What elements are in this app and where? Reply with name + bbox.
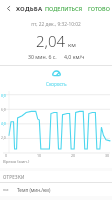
staticText: 8,0 [1, 93, 6, 98]
staticText: ГОТОВО [88, 5, 110, 12]
other: Скорость [52, 70, 61, 79]
staticText: 2,0 [1, 135, 6, 140]
staticText: 20 [71, 153, 76, 158]
staticText: ХОДЬБА [16, 5, 43, 13]
staticText: Скорость [46, 81, 67, 87]
staticText: ОТРЕЗКИ [3, 174, 25, 180]
staticText: Время (мин.) [3, 159, 30, 165]
staticText: км [3, 187, 9, 193]
staticText: Темп (мин./км) [17, 187, 51, 193]
button[interactable]: км [0, 186, 112, 194]
staticText: пт, 22 дек., 9:32-10:02 [31, 21, 81, 28]
staticText: 4,0 км/ч [64, 53, 85, 60]
staticText: 0 [5, 153, 8, 158]
staticText: 30 [105, 153, 110, 158]
staticText: ПОДЕЛИТЬСЯ [45, 5, 83, 12]
button[interactable]: ХОДЬБА [16, 5, 43, 13]
staticText: км [68, 41, 76, 49]
button[interactable]: ГОТОВО [86, 3, 112, 14]
staticText: 2,04 [36, 31, 66, 51]
staticText: 6,0 [1, 107, 6, 112]
button[interactable]: ПОДЕЛИТЬСЯ [43, 3, 85, 14]
staticText: 30 мин. 6 с. [28, 53, 57, 60]
staticText: 10 [37, 153, 42, 158]
button[interactable]: Назад [0, 0, 16, 17]
staticText: 4,0 [1, 121, 6, 126]
